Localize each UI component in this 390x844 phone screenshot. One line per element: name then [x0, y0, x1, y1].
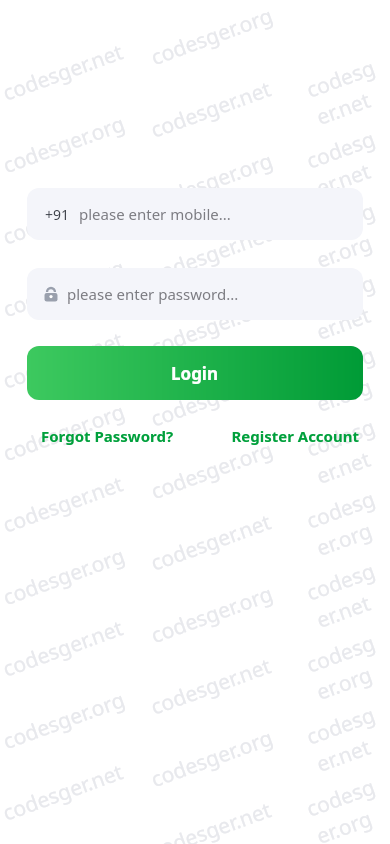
- staticText: codesger.net: [0, 757, 127, 828]
- button[interactable]: Register Account: [227, 420, 363, 452]
- staticText: codesger.net: [0, 181, 127, 252]
- button[interactable]: Login: [27, 346, 363, 400]
- staticText: codesger.org: [302, 337, 390, 419]
- staticText: codesger.org: [0, 685, 129, 756]
- staticText: codesger.org: [302, 769, 390, 844]
- staticText: please enter mobile...: [79, 204, 231, 224]
- staticText: codesger.net: [147, 651, 275, 722]
- staticText: codesger.net: [302, 121, 390, 203]
- staticText: codesger.net: [302, 50, 390, 132]
- staticText: codesger.net: [0, 37, 127, 108]
- staticText: codesger.net: [302, 409, 390, 491]
- button[interactable]: please enter password...: [27, 268, 363, 320]
- staticText: codesger.org: [302, 625, 390, 707]
- staticText: codesger.net: [0, 325, 127, 396]
- staticText: codesger.net: [302, 265, 390, 347]
- staticText: codesger.net: [147, 363, 275, 434]
- staticText: codesger.net: [147, 507, 275, 578]
- staticText: codesger.net: [147, 795, 275, 844]
- staticText: codesger.org: [0, 541, 129, 612]
- staticText: codesger.org: [0, 397, 129, 468]
- staticText: +91: [45, 205, 70, 224]
- staticText: codesger.net: [302, 697, 390, 779]
- staticText: codesger.net: [147, 74, 275, 145]
- staticText: please enter password...: [67, 284, 239, 304]
- staticText: codesger.org: [0, 109, 129, 180]
- button[interactable]: +91: [27, 188, 363, 240]
- button[interactable]: Forgot Password?: [27, 420, 188, 452]
- staticText: codesger.net: [147, 219, 275, 290]
- staticText: codesger.org: [147, 579, 277, 650]
- staticText: codesger.org: [147, 1, 277, 72]
- staticText: codesger.net: [302, 553, 390, 635]
- staticText: Login: [171, 362, 219, 385]
- staticText: codesger.net: [0, 613, 127, 684]
- staticText: codesger.org: [0, 253, 129, 324]
- staticText: codesger.org: [302, 193, 390, 275]
- staticText: codesger.org: [147, 435, 277, 506]
- staticText: codesger.org: [147, 723, 277, 794]
- staticText: codesger.org: [147, 291, 277, 362]
- staticText: codesger.org: [302, 481, 390, 563]
- staticText: codesger.org: [147, 146, 277, 217]
- staticText: Forgot Password?: [41, 426, 174, 446]
- staticText: codesger.net: [0, 469, 127, 540]
- staticText: Register Account: [231, 426, 359, 446]
